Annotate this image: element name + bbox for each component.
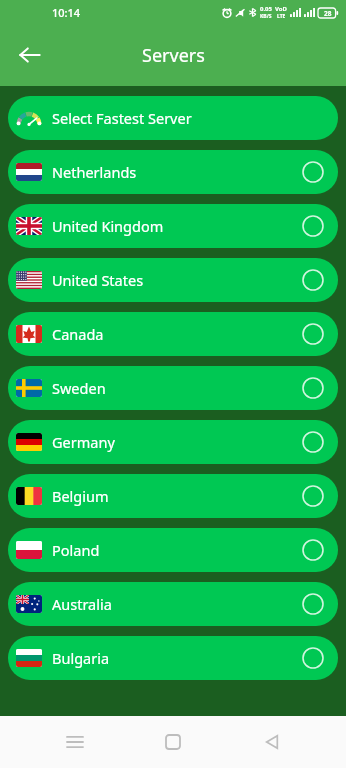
- staticText: 10:14: [52, 5, 81, 20]
- staticText: United States: [52, 270, 302, 290]
- staticText: VoD: [275, 5, 287, 13]
- staticText: United Kingdom: [52, 216, 302, 236]
- staticText: Australia: [52, 594, 302, 614]
- button[interactable]: Recent apps: [51, 718, 99, 766]
- button[interactable]: Bulgaria: [8, 636, 338, 680]
- button[interactable]: Germany: [8, 420, 338, 464]
- staticText: Bulgaria: [52, 648, 302, 668]
- staticText: 28: [324, 9, 332, 18]
- staticText: Select Fastest Server: [52, 108, 192, 128]
- button[interactable]: Select Fastest Server: [8, 96, 338, 140]
- button[interactable]: Home: [149, 718, 197, 766]
- staticText: 0.05: [260, 5, 272, 13]
- staticText: Belgium: [52, 486, 302, 506]
- button[interactable]: Poland: [8, 528, 338, 572]
- button[interactable]: Sweden: [8, 366, 338, 410]
- button[interactable]: Australia: [8, 582, 338, 626]
- staticText: LTE: [277, 13, 286, 20]
- button[interactable]: United States: [8, 258, 338, 302]
- button[interactable]: Back: [8, 33, 52, 77]
- button[interactable]: Back: [248, 718, 296, 766]
- staticText: Netherlands: [52, 162, 302, 182]
- staticText: Servers: [142, 43, 205, 68]
- button[interactable]: Netherlands: [8, 150, 338, 194]
- button[interactable]: Belgium: [8, 474, 338, 518]
- staticText: Germany: [52, 432, 302, 452]
- staticText: Canada: [52, 324, 302, 344]
- button[interactable]: Canada: [8, 312, 338, 356]
- staticText: KB/S: [260, 13, 272, 20]
- button[interactable]: United Kingdom: [8, 204, 338, 248]
- staticText: Sweden: [52, 378, 302, 398]
- staticText: Poland: [52, 540, 302, 560]
